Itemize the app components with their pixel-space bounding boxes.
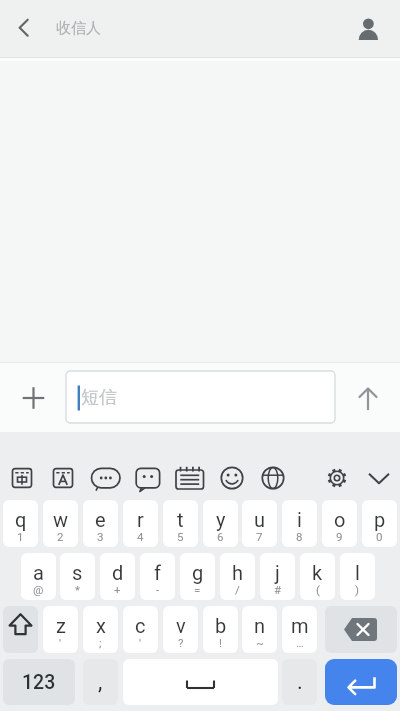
button[interactable]: i xyxy=(282,500,317,547)
staticText: ~ xyxy=(256,636,264,649)
staticText: s xyxy=(72,561,83,584)
button[interactable]: , xyxy=(83,659,118,705)
button[interactable] xyxy=(325,659,397,705)
button[interactable]: n xyxy=(242,606,277,653)
staticText: q xyxy=(15,508,27,531)
button[interactable] xyxy=(350,8,390,48)
button[interactable] xyxy=(123,659,278,705)
staticText: h xyxy=(232,561,244,584)
staticText: o xyxy=(334,508,346,531)
button[interactable]: 收信人 xyxy=(56,0,176,57)
button[interactable] xyxy=(17,381,51,415)
staticText: i xyxy=(297,508,302,531)
staticText: * xyxy=(75,583,80,596)
staticText: ' xyxy=(139,636,142,649)
button[interactable] xyxy=(257,462,289,494)
button[interactable]: v xyxy=(163,606,198,653)
staticText: 1 xyxy=(17,530,24,543)
staticText: 4 xyxy=(137,530,144,543)
button[interactable]: r xyxy=(123,500,158,547)
button[interactable] xyxy=(90,462,122,494)
button[interactable]: a xyxy=(21,553,56,600)
button[interactable] xyxy=(47,462,79,494)
button[interactable] xyxy=(363,462,395,494)
button[interactable]: f xyxy=(140,553,175,600)
staticText: 短信 xyxy=(81,386,117,409)
button[interactable]: x xyxy=(83,606,118,653)
button[interactable]: y xyxy=(203,500,238,547)
button[interactable]: h xyxy=(220,553,255,600)
staticText: 2 xyxy=(57,530,64,543)
staticText: e xyxy=(95,508,106,531)
button[interactable]: 123 xyxy=(3,659,75,705)
staticText: u xyxy=(254,508,266,531)
staticText: d xyxy=(112,561,124,584)
button[interactable]: o xyxy=(322,500,357,547)
button[interactable]: m xyxy=(282,606,317,653)
staticText: 0 xyxy=(376,530,383,543)
staticText: l xyxy=(355,561,360,584)
staticText: 收信人 xyxy=(56,19,101,38)
staticText: 3 xyxy=(97,530,104,543)
button[interactable] xyxy=(6,462,38,494)
button[interactable] xyxy=(216,462,248,494)
staticText: 123 xyxy=(22,671,56,694)
button[interactable]: . xyxy=(282,659,317,705)
staticText: 9 xyxy=(336,530,343,543)
staticText: 5 xyxy=(177,530,184,543)
staticText: a xyxy=(33,561,44,584)
staticText: f xyxy=(154,561,161,584)
staticText: + xyxy=(114,583,121,596)
button[interactable]: t xyxy=(163,500,198,547)
staticText: ! xyxy=(219,636,222,649)
button[interactable]: s xyxy=(60,553,95,600)
staticText: z xyxy=(56,614,66,637)
button[interactable]: k xyxy=(300,553,335,600)
button[interactable]: w xyxy=(43,500,78,547)
staticText: ) xyxy=(355,583,360,596)
button[interactable]: b xyxy=(203,606,238,653)
button[interactable]: p xyxy=(362,500,397,547)
staticText: b xyxy=(215,614,227,637)
button[interactable]: 短信 xyxy=(66,371,335,423)
staticText: , xyxy=(98,669,103,695)
button[interactable] xyxy=(321,462,353,494)
staticText: 7 xyxy=(256,530,263,543)
button[interactable] xyxy=(174,462,206,494)
button[interactable] xyxy=(132,462,164,494)
staticText: # xyxy=(274,583,282,596)
staticText: = xyxy=(194,583,201,596)
button[interactable]: q xyxy=(3,500,38,547)
button[interactable]: e xyxy=(83,500,118,547)
button[interactable]: z xyxy=(43,606,78,653)
button[interactable]: j xyxy=(260,553,295,600)
staticText: 8 xyxy=(296,530,303,543)
staticText: k xyxy=(312,561,323,584)
staticText: … xyxy=(296,636,304,649)
staticText: j xyxy=(275,561,280,584)
staticText: 6 xyxy=(217,530,224,543)
staticText: r xyxy=(137,508,144,531)
button[interactable]: c xyxy=(123,606,158,653)
staticText: . xyxy=(297,669,303,695)
button[interactable]: d xyxy=(100,553,135,600)
staticText: c xyxy=(135,614,146,637)
staticText: x xyxy=(96,614,106,637)
button[interactable]: u xyxy=(242,500,277,547)
button[interactable]: g xyxy=(180,553,215,600)
staticText: v xyxy=(176,614,186,637)
staticText: - xyxy=(156,583,160,596)
staticText: n xyxy=(254,614,266,637)
staticText: t xyxy=(177,508,184,531)
staticText: y xyxy=(216,508,226,531)
staticText: g xyxy=(192,561,204,584)
staticText: ? xyxy=(178,636,184,649)
staticText: m xyxy=(291,614,309,637)
button[interactable]: l xyxy=(340,553,375,600)
button[interactable] xyxy=(325,606,397,653)
staticText: ' xyxy=(59,636,62,649)
staticText: ; xyxy=(99,636,102,649)
button[interactable] xyxy=(3,606,38,653)
button[interactable] xyxy=(351,382,385,416)
button[interactable] xyxy=(6,11,40,45)
